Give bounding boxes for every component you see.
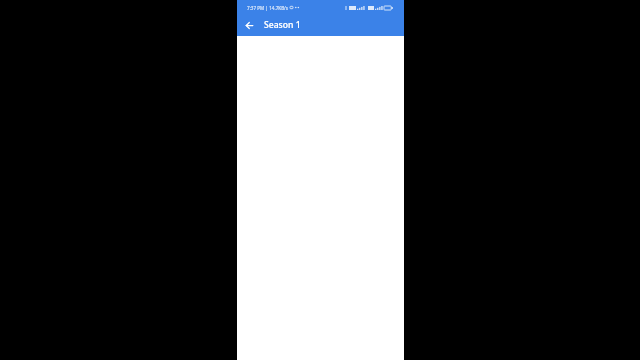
- staticText: 7:37 PM | 14.7KB/s: [247, 5, 289, 11]
- staticText: Season 1: [264, 19, 301, 31]
- button[interactable]: Navigate up: [241, 17, 257, 33]
